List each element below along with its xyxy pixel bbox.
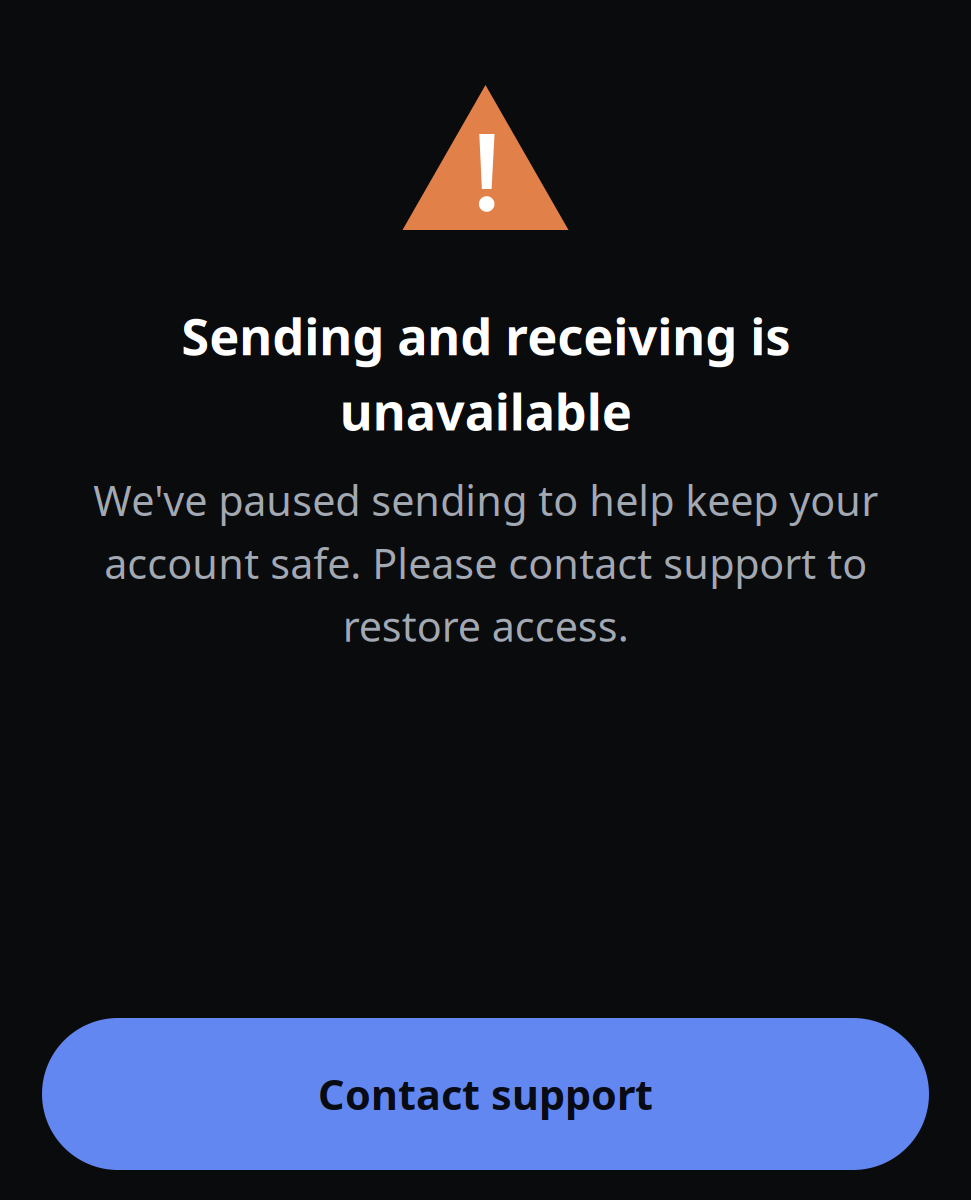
button[interactable]: Contact support bbox=[42, 1018, 929, 1170]
staticText: Contact support bbox=[318, 1067, 653, 1121]
staticText: Sending and receiving is unavailable bbox=[181, 302, 790, 445]
staticText: We've paused sending to help keep your a… bbox=[93, 473, 878, 653]
